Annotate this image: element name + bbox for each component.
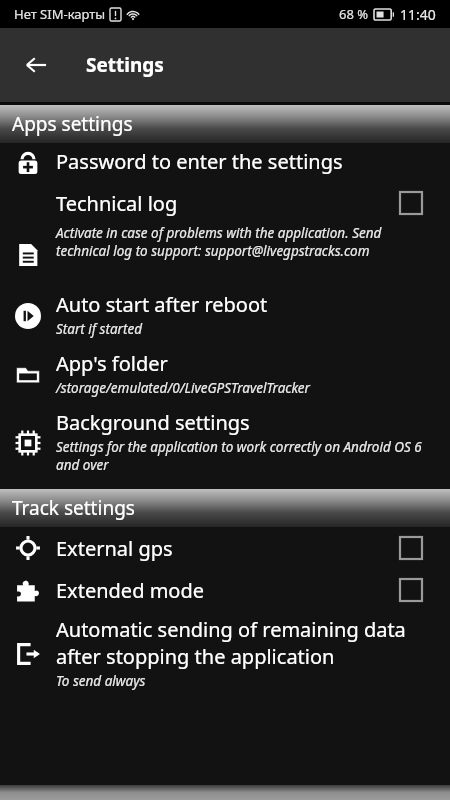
button[interactable]: Password to enter the settings — [0, 143, 450, 182]
staticText: Auto start after reboot — [56, 291, 268, 318]
staticText: Password to enter the settings — [56, 148, 343, 175]
button[interactable]: Automatic sending of remaining data afte… — [0, 611, 450, 697]
button[interactable]: Extended mode — [0, 569, 450, 611]
staticText: /storage/emulated/0/LiveGPSTravelTracker — [56, 379, 310, 397]
button[interactable]: Back — [12, 41, 60, 89]
staticText: Activate in case of problems with the ap… — [56, 224, 438, 260]
staticText: Extended mode — [56, 577, 400, 604]
staticText: Нет SIM-карты — [14, 5, 106, 23]
staticText: Automatic sending of remaining data afte… — [56, 616, 440, 670]
staticText: 68 % — [339, 5, 369, 23]
staticText: Start if started — [56, 320, 143, 338]
button[interactable]: Technical log — [0, 182, 450, 286]
staticText: To send always — [56, 672, 146, 690]
button[interactable]: Auto start after reboot — [0, 286, 450, 345]
staticText: Technical log — [56, 190, 400, 217]
staticText: Track settings — [12, 495, 135, 521]
staticText: App's folder — [56, 350, 168, 377]
staticText: 11:40 — [400, 5, 436, 24]
staticText: Apps settings — [12, 111, 133, 137]
button[interactable]: App's folder — [0, 345, 450, 404]
staticText: External gps — [56, 535, 400, 562]
staticText: Settings for the application to work cor… — [56, 438, 440, 474]
button[interactable]: Background settings — [0, 404, 450, 481]
staticText: Settings — [86, 52, 164, 78]
staticText: Background settings — [56, 409, 250, 436]
button[interactable]: External gps — [0, 527, 450, 569]
